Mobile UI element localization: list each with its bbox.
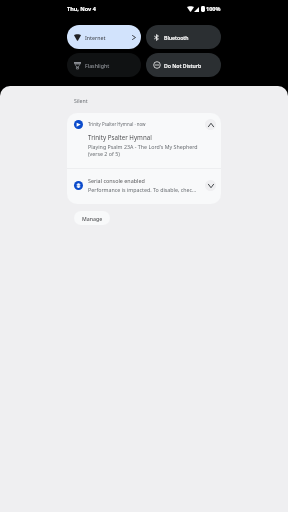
staticText: Thu, Nov 4: [67, 5, 96, 12]
button[interactable]: Manage: [74, 211, 110, 225]
button[interactable]: Collapse: [205, 119, 216, 130]
button[interactable]: Bluetooth: [146, 25, 221, 49]
staticText: Do Not Disturb: [164, 62, 202, 69]
staticText: Internet: [85, 34, 106, 41]
button[interactable]: Internet: [67, 25, 141, 49]
button[interactable]: Do Not Disturb: [146, 53, 221, 77]
staticText: Manage: [82, 215, 103, 222]
staticText: Flashlight: [85, 62, 110, 69]
staticText: Silent: [74, 97, 88, 104]
button[interactable]: Serial console enabled: [67, 168, 221, 203]
staticText: Playing Psalm 23A - The Lord's My Shephe…: [88, 143, 200, 158]
staticText: 100%: [206, 5, 221, 12]
staticText: Performance is impacted. To disable, che…: [88, 186, 198, 193]
button[interactable]: Flashlight: [67, 53, 141, 77]
staticText: Serial console enabled: [88, 177, 145, 184]
button[interactable]: Expand: [205, 180, 216, 191]
staticText: Trinity Psalter Hymnal: [88, 133, 152, 141]
staticText: Trinity Psalter Hymnal · now: [88, 121, 146, 127]
button[interactable]: Trinity Psalter Hymnal · now: [67, 113, 221, 168]
staticText: Bluetooth: [164, 34, 189, 41]
